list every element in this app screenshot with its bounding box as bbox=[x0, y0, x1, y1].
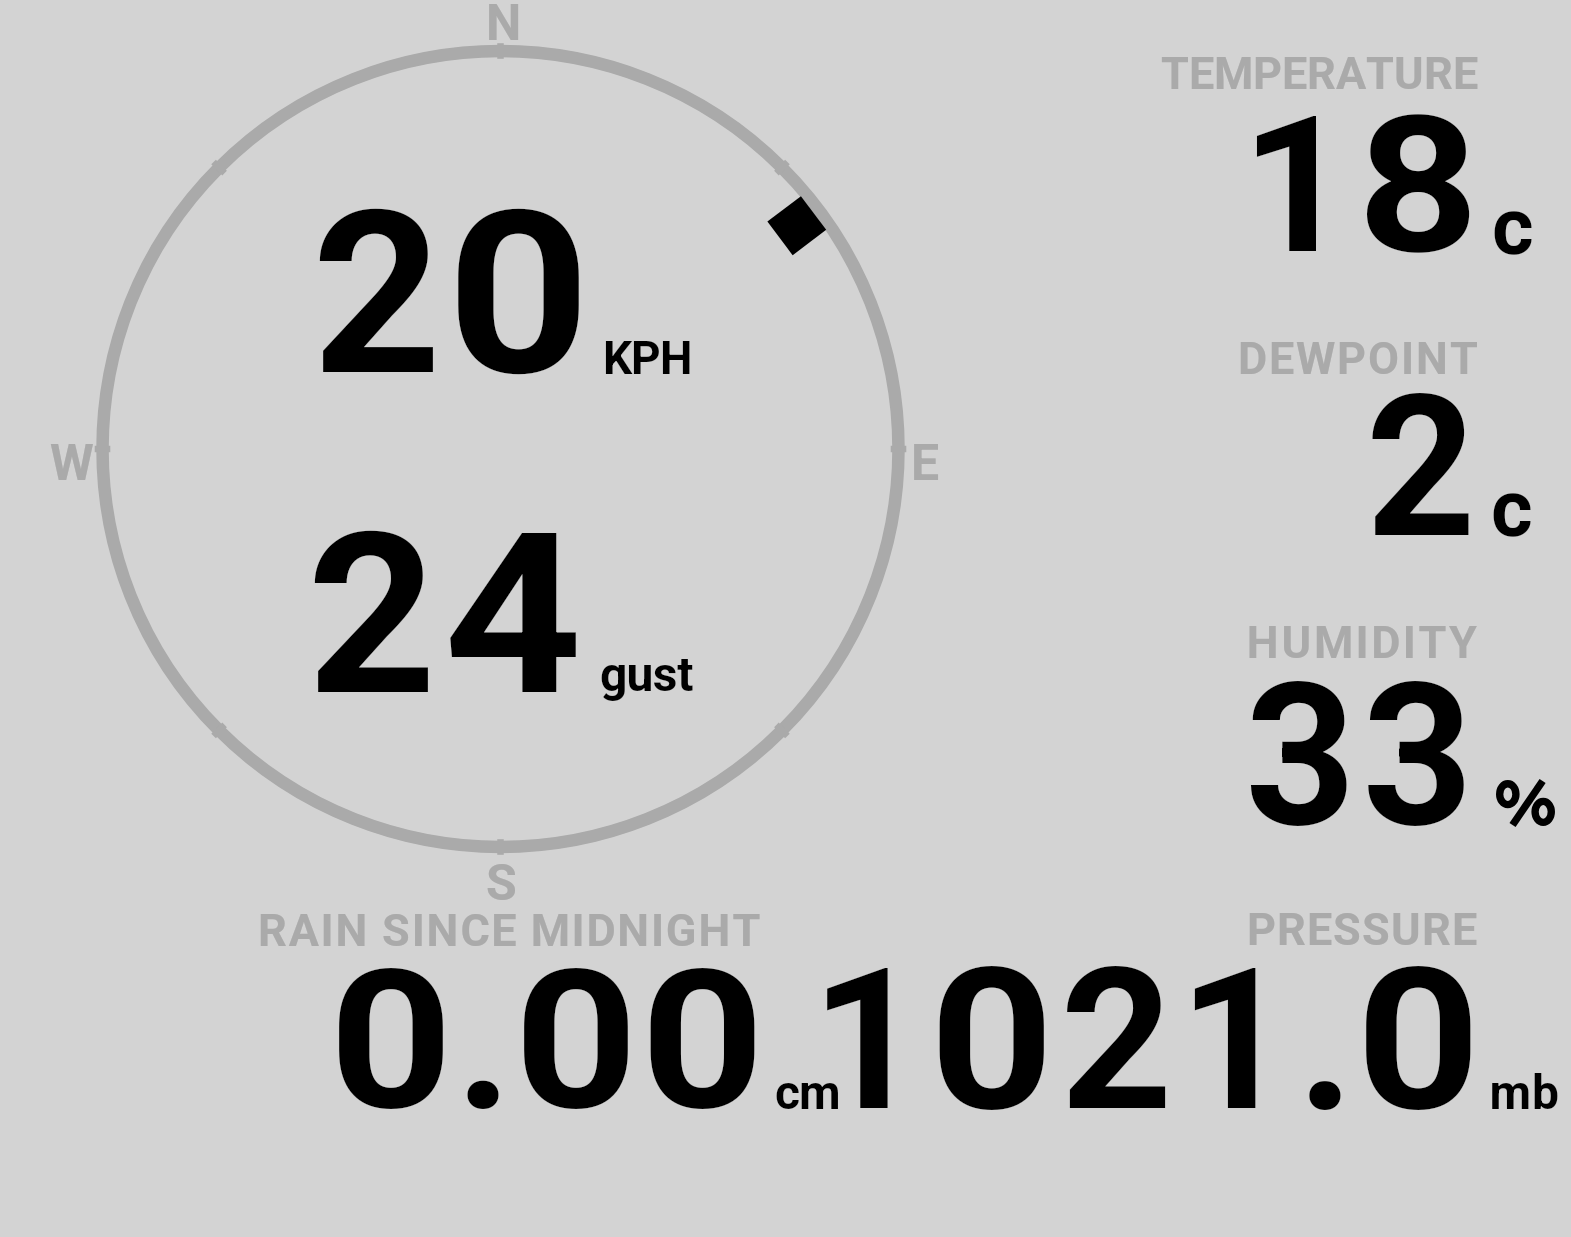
button[interactable]: Dewpoint 2 degrees C bbox=[1010, 325, 1560, 555]
button[interactable]: Rain since midnight 0.00 cm bbox=[250, 900, 850, 1120]
button[interactable]: Wind 20 KPH gusting 24, compass bbox=[88, 36, 916, 864]
button[interactable]: Pressure 1021.0 mb bbox=[860, 900, 1560, 1120]
button[interactable]: Temperature 18 degrees C bbox=[1010, 40, 1560, 270]
button[interactable]: Humidity 33 percent bbox=[1010, 610, 1560, 840]
